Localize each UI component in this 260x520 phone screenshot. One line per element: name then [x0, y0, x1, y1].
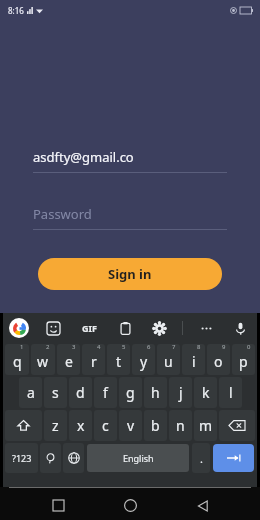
staticText: s	[52, 383, 59, 402]
staticText: e	[65, 352, 73, 371]
button[interactable]: Back	[188, 491, 218, 520]
button[interactable]: Shift	[5, 410, 42, 441]
staticText: y	[140, 352, 148, 371]
button[interactable]: m	[194, 410, 217, 441]
staticText: Sign in	[108, 265, 152, 283]
button[interactable]: 6	[132, 344, 155, 375]
button[interactable]: 4	[82, 344, 105, 375]
button[interactable]: k	[194, 377, 217, 408]
button[interactable]: l	[219, 377, 242, 408]
staticText: i	[192, 352, 196, 371]
button[interactable]: Voice input	[229, 317, 251, 339]
staticText: GIF	[82, 322, 97, 334]
button[interactable]: Change language	[63, 443, 84, 473]
staticText: .	[200, 451, 203, 466]
button[interactable]: x	[69, 410, 92, 441]
button[interactable]: GIF	[77, 317, 101, 339]
button[interactable]: Sign in	[38, 258, 222, 290]
button[interactable]: 0	[232, 344, 255, 375]
staticText: h	[151, 383, 160, 402]
staticText: f	[103, 383, 108, 402]
staticText: 2	[46, 344, 50, 351]
staticText: o	[214, 352, 223, 371]
button[interactable]: 1	[5, 344, 29, 375]
button[interactable]: s	[44, 377, 67, 408]
button[interactable]: c	[94, 410, 117, 441]
staticText: q	[13, 352, 22, 371]
staticText: 5	[122, 344, 126, 351]
button[interactable]: f	[94, 377, 117, 408]
button[interactable]: English	[87, 444, 189, 472]
staticText: 8	[197, 344, 201, 351]
button[interactable]: Recents	[43, 491, 73, 520]
staticText: English	[123, 452, 154, 464]
button[interactable]: 7	[157, 344, 180, 375]
staticText: 1	[20, 344, 24, 351]
button[interactable]: .	[192, 443, 210, 473]
staticText: c	[102, 416, 109, 435]
button[interactable]: Enter	[213, 444, 254, 472]
staticText: j	[179, 383, 183, 402]
staticText: v	[127, 416, 135, 435]
button[interactable]: 8	[182, 344, 205, 375]
button[interactable]: More options	[195, 317, 217, 339]
staticText: r	[91, 352, 97, 371]
staticText: 4	[97, 344, 101, 351]
staticText: a	[27, 383, 35, 402]
staticText: ?123	[12, 452, 32, 464]
button[interactable]: Home	[115, 491, 145, 520]
button[interactable]: 3	[57, 344, 80, 375]
staticText: 0	[247, 344, 251, 351]
button[interactable]: n	[169, 410, 192, 441]
staticText: m	[199, 416, 213, 435]
staticText: w	[37, 352, 49, 371]
staticText: asdfty@gmail.co	[33, 148, 134, 166]
staticText: Password	[33, 205, 92, 223]
button[interactable]: g	[119, 377, 142, 408]
button[interactable]: h	[144, 377, 167, 408]
button[interactable]: 2	[31, 344, 55, 375]
staticText: t	[116, 352, 122, 371]
button[interactable]: Stickers	[42, 317, 64, 339]
button[interactable]: Clipboard	[114, 317, 136, 339]
button[interactable]: b	[144, 410, 167, 441]
staticText: l	[229, 383, 233, 402]
button[interactable]: 9	[207, 344, 230, 375]
staticText: 6	[147, 344, 151, 351]
button[interactable]: d	[69, 377, 92, 408]
button[interactable]: Settings	[148, 317, 170, 339]
button[interactable]: Backspace	[219, 410, 255, 441]
button[interactable]: ?123	[5, 443, 38, 473]
staticText: g	[126, 383, 135, 402]
staticText: u	[164, 352, 173, 371]
button[interactable]: v	[119, 410, 142, 441]
button[interactable]: z	[44, 410, 67, 441]
button[interactable]: Emoji	[40, 443, 61, 473]
staticText: p	[239, 352, 248, 371]
staticText: n	[176, 416, 185, 435]
button[interactable]: Password	[33, 205, 227, 230]
button[interactable]: j	[169, 377, 192, 408]
staticText: z	[52, 416, 59, 435]
button[interactable]: 5	[107, 344, 130, 375]
staticText: b	[151, 416, 160, 435]
staticText: 3	[72, 344, 76, 351]
staticText: 7	[172, 344, 176, 351]
staticText: 8:16	[8, 5, 24, 16]
staticText: k	[202, 383, 210, 402]
button[interactable]: a	[19, 377, 42, 408]
button[interactable]: Google	[9, 318, 29, 338]
staticText: 9	[222, 344, 226, 351]
staticText: x	[77, 416, 85, 435]
button[interactable]: asdfty@gmail.co	[33, 148, 227, 173]
staticText: d	[76, 383, 85, 402]
